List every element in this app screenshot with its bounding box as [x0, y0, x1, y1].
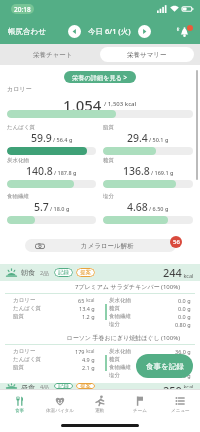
staticText: 5.7 — [34, 200, 49, 214]
staticText: 昼食 — [21, 383, 35, 389]
staticText: / 6.50 g — [149, 205, 169, 212]
staticText: 0.0 g — [178, 313, 191, 320]
button[interactable]: 食事 — [0, 390, 40, 419]
staticText: 糖質 — [109, 305, 120, 312]
staticText: 20:18 — [14, 5, 31, 14]
button[interactable]: 提案 — [76, 268, 95, 277]
staticText: メニュー — [171, 408, 190, 414]
staticText: たんぱく質 — [7, 124, 36, 131]
button[interactable]: 栄養サマリー — [100, 47, 194, 62]
staticText: 塩分 — [109, 372, 120, 379]
staticText: 7プレミアム サラダチキンバー (100%) — [0, 283, 180, 291]
staticText: 提案 — [80, 383, 91, 389]
staticText: チーム — [133, 408, 147, 414]
button[interactable]: 体温バイタル — [40, 390, 80, 419]
staticText: 朝食 — [21, 268, 35, 277]
staticText: 2.1 g — [82, 364, 95, 371]
button[interactable]: Notifications — [174, 21, 194, 41]
staticText: 2品 — [40, 269, 49, 277]
staticText: 脂質 — [103, 124, 114, 131]
button[interactable]: 運動 — [80, 390, 120, 419]
button[interactable]: 昼食 — [6, 383, 194, 389]
button[interactable]: ローソン 手巻おにぎり焼鮭ほぐし (100%) — [0, 332, 200, 383]
staticText: 食物繊維 — [109, 313, 131, 320]
staticText: 栄養の詳細を見る > — [72, 73, 128, 81]
staticText: 体温バイタル — [46, 408, 74, 414]
staticText: たんぱく質 — [13, 305, 42, 312]
staticText: 56 — [173, 238, 180, 246]
staticText: 炭水化物 — [109, 297, 131, 304]
staticText: 4品 — [40, 383, 49, 389]
staticText: 栄養サマリー — [127, 51, 167, 59]
staticText: 29.4 — [127, 131, 148, 145]
staticText: 糖質 — [103, 157, 114, 164]
staticText: カメラロール解析 — [81, 242, 134, 250]
staticText: / 169.1 g — [151, 169, 174, 176]
button[interactable]: Next day — [138, 25, 151, 38]
staticText: 運動 — [95, 408, 105, 414]
staticText: 250 — [163, 383, 182, 389]
staticText: 140.8 — [26, 164, 53, 178]
staticText: 65 — [78, 297, 85, 304]
staticText: 記録 — [58, 269, 69, 276]
staticText: 糖質 — [109, 356, 120, 363]
staticText: 1.2 g — [82, 313, 95, 320]
staticText: 炭水化物 — [7, 157, 29, 164]
staticText: 食事 — [15, 408, 25, 414]
staticText: 179 — [75, 348, 85, 355]
button[interactable]: Previous day — [68, 25, 81, 38]
staticText: カロリー — [7, 85, 32, 93]
staticText: 4.68 — [127, 200, 148, 214]
staticText: / 56.4 g — [53, 136, 73, 143]
staticText: たんぱく質 — [13, 356, 42, 363]
staticText: 食物繊維 — [109, 364, 131, 371]
staticText: 食物繊維 — [7, 193, 29, 200]
staticText: 0.80 g — [175, 321, 191, 328]
staticText: 炭水化物 — [109, 348, 131, 355]
staticText: kcal — [182, 383, 194, 388]
staticText: 1.2 g — [178, 364, 191, 371]
staticText: 記録 — [58, 383, 69, 389]
staticText: 59.9 — [31, 131, 52, 145]
staticText: 13.4 g — [79, 305, 95, 312]
button[interactable]: 朝食 — [6, 264, 194, 281]
staticText: カロリー — [13, 297, 36, 304]
staticText: 食事を記録 — [146, 362, 184, 371]
staticText: 塩分 — [103, 193, 114, 200]
staticText: 栄養チャート — [33, 51, 73, 59]
staticText: kcal — [85, 348, 95, 354]
button[interactable]: 食事を記録 — [136, 354, 193, 378]
staticText: 0.90 g — [175, 372, 191, 379]
staticText: / 50.1 g — [149, 136, 169, 143]
staticText: kcal — [85, 297, 95, 303]
button[interactable]: 提案 — [76, 383, 95, 389]
button[interactable]: 記録 — [54, 383, 73, 389]
staticText: 244 — [163, 265, 182, 280]
staticText: 136.8 — [123, 164, 150, 178]
staticText: 脂質 — [13, 364, 24, 371]
staticText: / 1,503 kcal — [104, 100, 137, 108]
staticText: 34.4 g — [175, 356, 191, 363]
staticText: 提案 — [80, 269, 91, 276]
button[interactable]: チーム — [120, 390, 160, 419]
button[interactable]: 帳尻合わせ — [8, 27, 46, 36]
staticText: kcal — [182, 272, 194, 279]
staticText: カロリー — [13, 348, 36, 355]
staticText: 0.0 g — [178, 297, 191, 304]
button[interactable]: 記録 — [54, 268, 73, 277]
button[interactable]: 栄養の詳細を見る > — [64, 71, 136, 83]
staticText: / 187.8 g — [54, 169, 77, 176]
button[interactable]: メニュー — [160, 390, 200, 419]
staticText: 36.0 g — [175, 348, 191, 355]
staticText: 1,054 — [63, 95, 102, 111]
staticText: ローソン 手巻おにぎり焼鮭ほぐし (100%) — [0, 334, 180, 342]
button[interactable]: 栄養チャート — [6, 47, 100, 62]
staticText: 今日 6/1 (火) — [88, 26, 131, 36]
staticText: 塩分 — [109, 321, 120, 328]
button[interactable]: 7プレミアム サラダチキンバー (100%) — [0, 281, 200, 332]
button[interactable]: カメラロール解析 — [25, 239, 176, 252]
staticText: 0.0 g — [178, 305, 191, 312]
staticText: 脂質 — [13, 313, 24, 320]
staticText: / 18.0 g — [50, 205, 70, 212]
staticText: 4.9 g — [82, 356, 95, 363]
